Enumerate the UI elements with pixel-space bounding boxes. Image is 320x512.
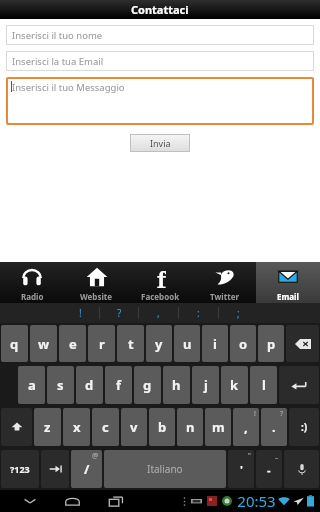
staticText: -: [267, 462, 271, 477]
button[interactable]: Radio: [0, 262, 64, 303]
button[interactable]: !: [61, 303, 99, 323]
button[interactable]: Inserisci il tuo nome: [6, 25, 314, 45]
staticText: l: [262, 376, 266, 394]
button[interactable]: ?123: [1, 450, 39, 488]
button[interactable]: m: [205, 408, 231, 446]
button[interactable]: v: [121, 408, 147, 446]
staticText: f: [157, 264, 166, 290]
button[interactable]: Shift: [1, 408, 32, 446]
button[interactable]: q: [1, 325, 28, 362]
staticText: r: [99, 335, 105, 353]
staticText: m: [212, 418, 225, 436]
button[interactable]: h: [163, 366, 190, 404]
button[interactable]: r: [88, 325, 115, 362]
button[interactable]: d: [76, 366, 103, 404]
staticText: Website: [80, 291, 113, 302]
staticText: @: [92, 451, 99, 461]
staticText: b: [158, 418, 167, 436]
staticText: t: [128, 335, 134, 353]
staticText: Inserisci la tua Email: [12, 55, 104, 68]
staticText: Contattaci: [131, 2, 189, 17]
staticText: !: [254, 409, 256, 419]
button[interactable]: ?: [100, 303, 138, 323]
button[interactable]: l: [250, 366, 277, 404]
staticText: ,: [244, 418, 248, 436]
staticText: ;: [237, 306, 240, 320]
button[interactable]: ,: [233, 408, 259, 446]
button[interactable]: Voice input: [284, 450, 319, 488]
staticText: Facebook: [141, 291, 180, 302]
staticText: z: [44, 418, 51, 436]
staticText: h: [172, 376, 181, 394]
button[interactable]: Backspace: [286, 325, 319, 362]
button[interactable]: y: [146, 325, 172, 362]
button[interactable]: e: [59, 325, 86, 362]
staticText: e: [69, 335, 77, 353]
staticText: Email: [277, 291, 299, 302]
button[interactable]: Email: [256, 262, 320, 303]
button[interactable]: f: [128, 262, 192, 303]
staticText: a: [28, 376, 36, 394]
button[interactable]: Invia: [130, 134, 190, 152]
button[interactable]: Hide keyboard: [10, 490, 50, 512]
button[interactable]: Inserisci la tua Email: [6, 51, 314, 71]
button[interactable]: o: [230, 325, 256, 362]
button[interactable]: ': [228, 450, 254, 488]
staticText: n: [186, 418, 195, 436]
staticText: j: [204, 376, 208, 394]
staticText: Invia: [150, 137, 171, 149]
button[interactable]: Tab: [41, 450, 69, 488]
staticText: :): [301, 420, 308, 434]
staticText: i: [213, 335, 217, 353]
button[interactable]: j: [192, 366, 219, 404]
button[interactable]: ,: [139, 303, 178, 323]
staticText: o: [239, 335, 248, 353]
staticText: s: [57, 376, 64, 394]
button[interactable]: x: [63, 408, 90, 446]
staticText: :: [197, 306, 200, 320]
staticText: Inserisci il tuo Messaggio: [12, 81, 125, 94]
staticText: u: [183, 335, 192, 353]
button[interactable]: u: [174, 325, 200, 362]
button[interactable]: s: [47, 366, 74, 404]
button[interactable]: w: [30, 325, 57, 362]
button[interactable]: :: [179, 303, 218, 323]
staticText: ?123: [10, 463, 30, 475]
button[interactable]: Website: [64, 262, 128, 303]
button[interactable]: t: [117, 325, 144, 362]
button[interactable]: c: [92, 408, 119, 446]
staticText: 20:53: [237, 491, 276, 511]
button[interactable]: g: [134, 366, 161, 404]
staticText: y: [155, 335, 163, 353]
button[interactable]: /: [71, 450, 102, 488]
staticText: _: [275, 451, 279, 461]
button[interactable]: Recent apps: [94, 490, 138, 512]
button[interactable]: i: [202, 325, 228, 362]
button[interactable]: n: [177, 408, 203, 446]
staticText: /: [84, 460, 90, 478]
button[interactable]: Enter: [279, 366, 319, 404]
staticText: f: [116, 376, 122, 394]
button[interactable]: Italiano: [104, 450, 226, 488]
staticText: w: [38, 335, 50, 353]
button[interactable]: ;: [219, 303, 258, 323]
button[interactable]: Inserisci il tuo Messaggio: [6, 77, 314, 125]
button[interactable]: f: [105, 366, 132, 404]
button[interactable]: a: [18, 366, 45, 404]
staticText: p: [267, 335, 276, 353]
staticText: x: [73, 418, 81, 436]
button[interactable]: Twitter: [192, 262, 256, 303]
button[interactable]: Home: [50, 490, 94, 512]
button[interactable]: -: [256, 450, 282, 488]
staticText: v: [130, 418, 138, 436]
button[interactable]: z: [34, 408, 61, 446]
staticText: Italiano: [147, 462, 183, 476]
button[interactable]: b: [149, 408, 175, 446]
button[interactable]: p: [258, 325, 284, 362]
staticText: Radio: [21, 291, 44, 302]
button[interactable]: k: [221, 366, 248, 404]
staticText: Inserisci il tuo nome: [12, 29, 103, 42]
staticText: ?: [280, 409, 284, 419]
button[interactable]: .: [261, 408, 287, 446]
button[interactable]: :): [289, 408, 319, 446]
